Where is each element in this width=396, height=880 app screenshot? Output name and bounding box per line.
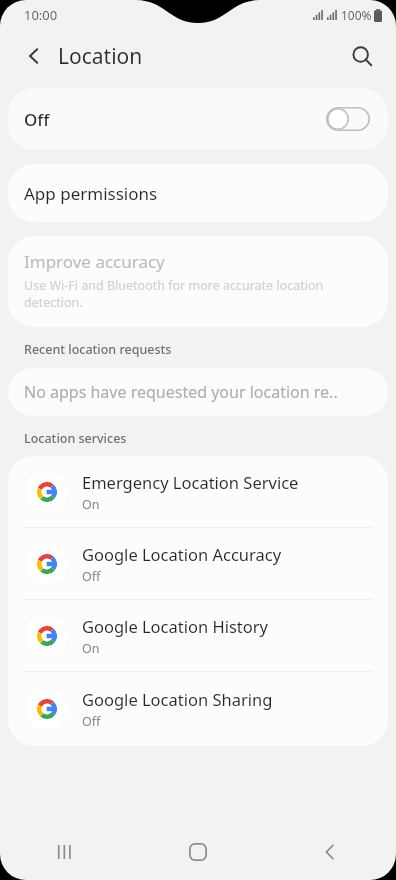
button[interactable]: Back: [301, 824, 359, 880]
button[interactable]: Back: [12, 34, 56, 78]
staticText: On: [82, 640, 100, 657]
button[interactable]: App permissions: [8, 164, 388, 222]
button[interactable]: Recents: [37, 824, 95, 880]
staticText: On: [82, 496, 100, 513]
button[interactable]: Improve accuracy: [8, 236, 388, 327]
staticText: Off: [82, 713, 101, 730]
staticText: Google Location History: [82, 615, 269, 637]
staticText: No apps have requested your location re.…: [24, 381, 338, 403]
button[interactable]: Emergency Location Service: [8, 456, 388, 527]
staticText: Google Location Sharing: [82, 688, 273, 710]
staticText: App permissions: [24, 182, 158, 205]
staticText: 10:00: [24, 6, 58, 24]
button[interactable]: Google Location Accuracy: [8, 528, 388, 599]
button[interactable]: Home: [169, 824, 227, 880]
button[interactable]: Google Location Sharing: [8, 672, 388, 746]
staticText: Improve accuracy: [24, 250, 165, 273]
staticText: 100%: [341, 7, 372, 23]
button[interactable]: Off: [8, 88, 388, 150]
staticText: Off: [82, 568, 101, 585]
staticText: Use Wi-Fi and Bluetooth for more accurat…: [24, 277, 368, 311]
staticText: Google Location Accuracy: [82, 543, 282, 565]
staticText: Emergency Location Service: [82, 471, 299, 493]
staticText: Off: [24, 108, 50, 131]
staticText: Location services: [24, 430, 127, 447]
staticText: Recent location requests: [24, 341, 172, 358]
button[interactable]: Google Location History: [8, 600, 388, 671]
staticText: Location: [58, 42, 143, 71]
button[interactable]: Search: [340, 34, 384, 78]
